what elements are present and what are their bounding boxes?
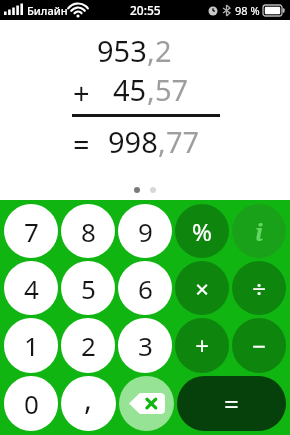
- button[interactable]: Info: [232, 204, 286, 258]
- staticText: =: [224, 386, 239, 421]
- staticText: %: [192, 215, 212, 248]
- staticText: 77: [166, 122, 200, 161]
- staticText: ÷: [252, 272, 266, 305]
- button[interactable]: ×: [175, 261, 229, 315]
- staticText: ,: [147, 70, 155, 109]
- button[interactable]: 9: [118, 204, 172, 258]
- button[interactable]: =: [177, 376, 286, 431]
- staticText: 20:55: [130, 2, 161, 18]
- button[interactable]: 4: [4, 261, 58, 315]
- staticText: ×: [195, 272, 209, 305]
- staticText: ,: [84, 378, 93, 419]
- staticText: 45: [113, 70, 147, 109]
- button[interactable]: 7: [4, 204, 58, 258]
- button[interactable]: 8: [61, 204, 115, 258]
- button[interactable]: 1: [4, 318, 58, 373]
- staticText: 0: [24, 386, 39, 421]
- staticText: +: [73, 73, 90, 112]
- staticText: 3: [138, 328, 153, 363]
- button[interactable]: 3: [118, 318, 172, 373]
- button[interactable]: Backspace: [119, 376, 174, 431]
- button[interactable]: %: [175, 204, 229, 258]
- staticText: 953: [97, 31, 147, 70]
- button[interactable]: 0: [4, 376, 58, 431]
- staticText: =: [73, 124, 90, 163]
- staticText: Билайн: [27, 3, 68, 18]
- button[interactable]: +: [175, 318, 229, 373]
- button[interactable]: −: [232, 318, 286, 373]
- staticText: 998: [108, 122, 158, 161]
- staticText: i: [255, 216, 264, 247]
- staticText: 6: [138, 271, 153, 306]
- staticText: 1: [24, 328, 39, 363]
- staticText: 9: [138, 214, 153, 249]
- staticText: −: [252, 329, 266, 362]
- button[interactable]: 2: [61, 318, 115, 373]
- staticText: 98 %: [235, 3, 260, 18]
- button[interactable]: ,: [61, 376, 116, 431]
- button[interactable]: ÷: [232, 261, 286, 315]
- staticText: 4: [24, 271, 39, 306]
- staticText: 2: [81, 328, 96, 363]
- staticText: 7: [24, 214, 39, 249]
- button[interactable]: 6: [118, 261, 172, 315]
- button[interactable]: 5: [61, 261, 115, 315]
- staticText: 5: [81, 271, 96, 306]
- staticText: 8: [81, 214, 96, 249]
- staticText: ,: [158, 122, 166, 161]
- staticText: 57: [155, 70, 189, 109]
- staticText: 2: [155, 31, 172, 70]
- staticText: +: [195, 329, 209, 362]
- staticText: ,: [147, 31, 155, 70]
